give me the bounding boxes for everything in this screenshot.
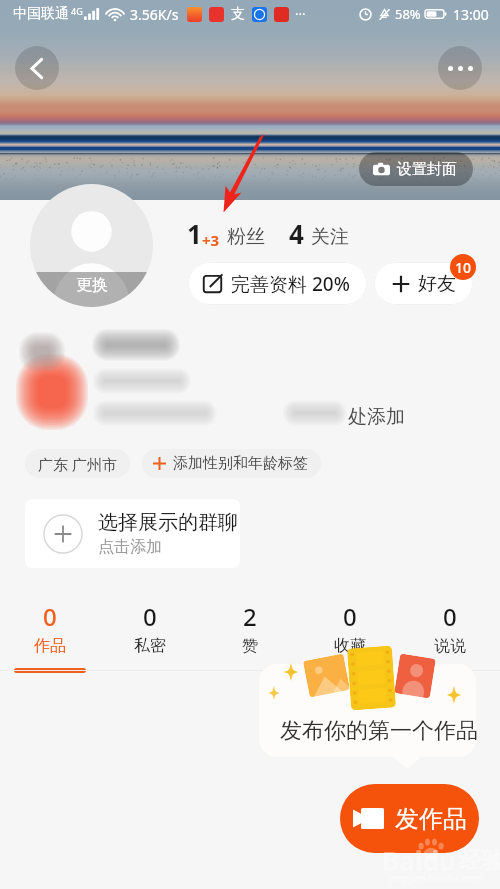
staticText: 58% xyxy=(395,5,421,23)
staticText: 收藏 xyxy=(334,636,366,656)
staticText: 赞 xyxy=(242,636,258,656)
staticText: ··· xyxy=(295,5,306,23)
staticText: 0 xyxy=(43,600,57,633)
staticText: 好友 xyxy=(418,272,456,296)
staticText: 点击添加 xyxy=(98,537,162,557)
staticText: Baidu xyxy=(382,843,456,878)
staticText: 中国联通 xyxy=(13,5,69,23)
button[interactable]: 更换头像 xyxy=(30,184,153,307)
button[interactable]: 广东 广州市 xyxy=(25,449,130,478)
staticText: 选择展示的群聊 xyxy=(98,510,238,535)
staticText: 添加性别和年龄标签 xyxy=(173,454,308,473)
staticText: 0 xyxy=(143,600,157,633)
staticText: 0 xyxy=(443,600,457,633)
staticText: 关注 xyxy=(311,225,349,249)
staticText: 4G xyxy=(71,5,83,17)
button[interactable] xyxy=(259,664,476,757)
staticText: 1 xyxy=(187,216,202,251)
button[interactable]: 好友 xyxy=(374,262,473,305)
staticText: 发布你的第一个作品 xyxy=(280,717,478,745)
button[interactable]: 添加性别和年龄标签 xyxy=(142,449,321,478)
button[interactable]: 选择展示的群聊 xyxy=(25,499,240,568)
staticText: 3.56K/s xyxy=(130,5,179,24)
staticText: 更换 xyxy=(76,275,108,295)
staticText: 广东 广州市 xyxy=(38,454,117,474)
staticText: 粉丝 xyxy=(227,225,265,249)
button[interactable]: 2 xyxy=(200,604,300,674)
staticText: 13:00 xyxy=(453,5,489,24)
staticText: 完善资料 20% xyxy=(231,271,350,297)
button[interactable]: 0 xyxy=(300,604,400,674)
staticText: 作品 xyxy=(34,636,66,656)
button[interactable]: 0 xyxy=(0,604,100,674)
staticText: 0 xyxy=(343,600,357,633)
staticText: 4 xyxy=(289,216,304,251)
button[interactable]: 完善资料 20% xyxy=(188,262,367,305)
button[interactable]: 0 xyxy=(400,604,500,674)
staticText: 私密 xyxy=(134,636,166,656)
staticText: 设置封面 xyxy=(397,160,457,179)
button[interactable]: 设置封面 xyxy=(359,152,473,186)
staticText: 2 xyxy=(243,600,257,633)
staticText: 10 xyxy=(455,258,472,277)
staticText: 支 xyxy=(231,5,245,23)
button[interactable]: 发作品 xyxy=(340,784,479,853)
staticText: 经验 xyxy=(459,846,500,875)
button[interactable]: 0 xyxy=(100,604,200,674)
staticText: +3 xyxy=(202,230,220,250)
staticText: 发作品 xyxy=(395,804,467,834)
button[interactable]: 返回 xyxy=(15,46,59,90)
button[interactable]: 更多 xyxy=(438,46,482,90)
staticText: 说说 xyxy=(434,636,466,656)
staticText: 处添加 xyxy=(348,405,405,429)
